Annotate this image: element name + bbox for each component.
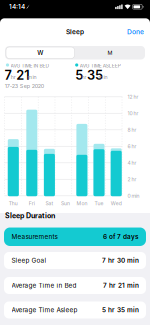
staticText: 2 hr bbox=[127, 176, 136, 182]
staticText: 6 of 7 days bbox=[103, 233, 139, 241]
staticText: 4 hr bbox=[127, 160, 136, 166]
staticText: AVG TIME IN BED bbox=[11, 63, 50, 69]
button[interactable]: Done bbox=[104, 26, 144, 38]
staticText: hr bbox=[11, 74, 16, 80]
staticText: 0 min bbox=[127, 193, 139, 199]
button[interactable]: M bbox=[75, 47, 144, 58]
staticText: 21 bbox=[16, 67, 29, 83]
staticText: Tue bbox=[94, 200, 103, 206]
staticText: Sleep bbox=[66, 28, 84, 36]
staticText: 7 hr 21 min bbox=[103, 282, 139, 289]
button[interactable]: W bbox=[6, 47, 74, 58]
staticText: Thu bbox=[9, 200, 18, 206]
staticText: 10 hr bbox=[127, 110, 138, 116]
staticText: 5 bbox=[75, 67, 83, 83]
staticText: Sun bbox=[61, 200, 70, 206]
staticText: 14:14 bbox=[9, 3, 25, 10]
button[interactable]: Average Time in Bed bbox=[4, 277, 146, 294]
staticText: Done bbox=[127, 28, 144, 36]
staticText: Sleep Goal bbox=[11, 257, 46, 264]
staticText: Average Time Asleep bbox=[11, 306, 77, 314]
staticText: AVG TIME ASLEEP bbox=[80, 63, 121, 69]
button[interactable]: Measurements bbox=[4, 227, 146, 246]
button[interactable]: Average Time Asleep bbox=[4, 301, 146, 318]
staticText: 6 hr bbox=[127, 143, 136, 149]
staticText: Fri bbox=[29, 200, 35, 206]
staticText: 5 hr 35 min bbox=[102, 306, 139, 314]
staticText: Measurements bbox=[11, 233, 57, 241]
staticText: hr bbox=[82, 74, 87, 80]
staticText: 7 hr 30 min bbox=[102, 257, 139, 264]
staticText: 12 hr bbox=[127, 94, 138, 100]
staticText: min bbox=[98, 74, 107, 80]
staticText: Mon bbox=[76, 200, 87, 206]
staticText: Sleep Duration bbox=[5, 211, 55, 220]
button[interactable]: Sleep Goal bbox=[4, 252, 146, 269]
staticText: 7 bbox=[4, 67, 11, 83]
staticText: W bbox=[37, 49, 43, 56]
staticText: 35 bbox=[87, 67, 103, 83]
staticText: Average Time in Bed bbox=[11, 282, 76, 289]
staticText: 8 hr bbox=[127, 127, 136, 133]
staticText: Wed bbox=[111, 200, 122, 206]
staticText: M bbox=[107, 49, 112, 56]
staticText: min bbox=[28, 74, 37, 80]
staticText: 17-23 Sep 2020 bbox=[5, 83, 44, 89]
staticText: Sat bbox=[45, 200, 53, 206]
